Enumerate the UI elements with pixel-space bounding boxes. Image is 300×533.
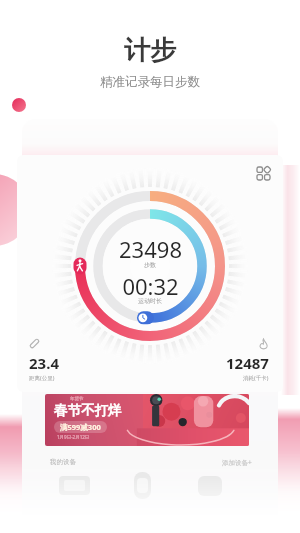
staticText: 运动时长: [138, 297, 162, 305]
staticText: 计步: [124, 34, 176, 67]
button[interactable]: Apps: [253, 163, 273, 183]
staticText: 年货节: [70, 396, 84, 402]
staticText: 00:32: [122, 271, 179, 301]
staticText: 23498: [119, 234, 182, 264]
staticText: 满599减300: [60, 422, 101, 432]
staticText: 1月9日-2月12日: [57, 434, 90, 440]
staticText: 距离(公里): [29, 374, 55, 382]
button[interactable]: 12487: [226, 338, 269, 382]
button[interactable]: 23.4: [29, 338, 59, 382]
button[interactable]: 我的设备: [50, 458, 76, 466]
button[interactable]: 年货节: [45, 394, 249, 446]
staticText: 消耗(千卡): [243, 374, 269, 382]
staticText: 23.4: [29, 353, 59, 373]
staticText: 12487: [226, 353, 269, 373]
button[interactable]: 添加设备+: [222, 458, 252, 467]
staticText: 精准记录每日步数: [100, 74, 200, 90]
staticText: 春节不打烊: [54, 402, 122, 419]
staticText: 步数: [144, 261, 156, 269]
